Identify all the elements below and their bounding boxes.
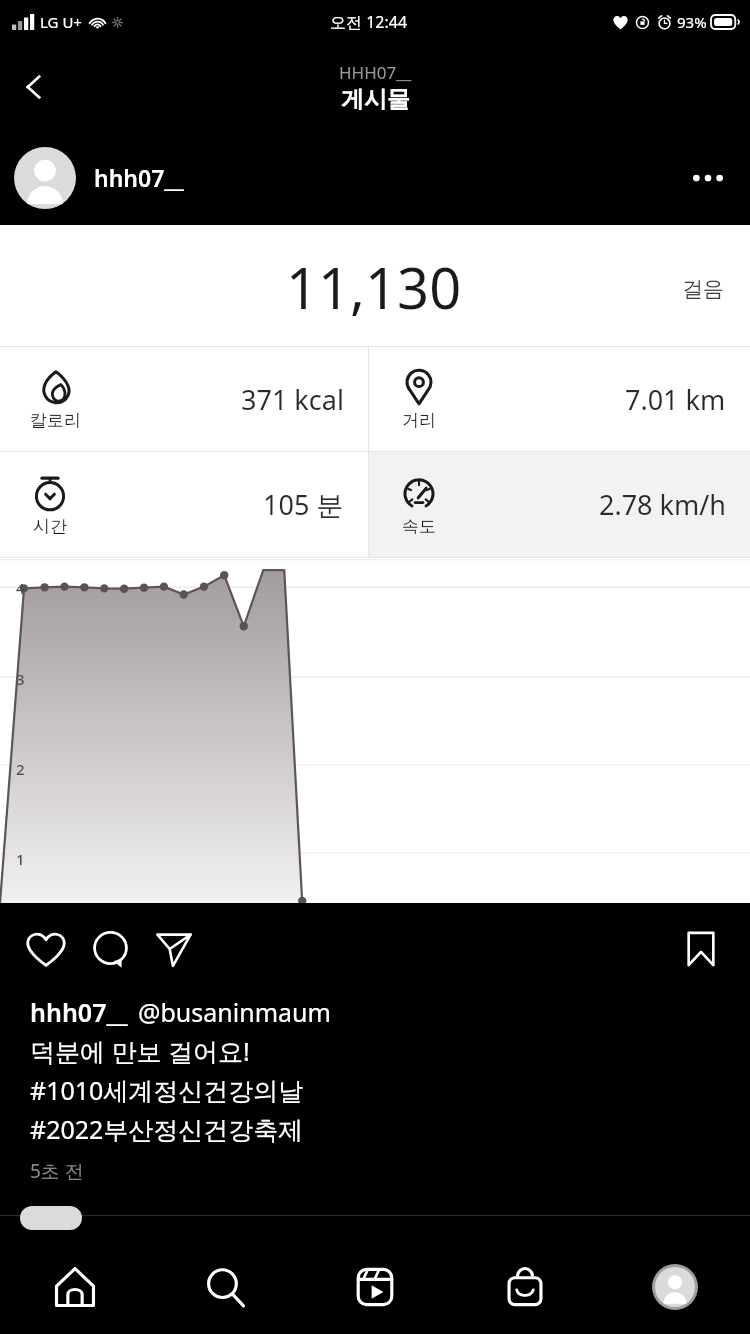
button[interactable]: Profile <box>600 1240 750 1334</box>
staticText: 105 분 <box>263 486 344 523</box>
staticText: hhh07__ <box>94 162 184 193</box>
staticText: 걸음 <box>682 276 724 302</box>
staticText: HHH07__ <box>339 61 412 84</box>
staticText: 게시물 <box>341 85 410 114</box>
button[interactable]: 시간 <box>0 452 368 557</box>
button[interactable]: 속도 <box>369 452 750 557</box>
staticText: 371 kcal <box>241 381 344 418</box>
button[interactable]: hhh07__ <box>30 995 128 1029</box>
staticText: 덕분에 만보 걸어요! <box>30 1034 250 1068</box>
button[interactable]: 거리 <box>369 347 750 451</box>
button[interactable]: #2022부산정신건강축제 <box>30 1112 304 1146</box>
button[interactable]: Search <box>150 1240 300 1334</box>
button[interactable]: hhh07__ <box>94 162 680 193</box>
button[interactable]: Home <box>0 1240 150 1334</box>
button[interactable]: Comment <box>78 917 142 981</box>
staticText: 속도 <box>402 516 436 537</box>
staticText: LG U+ <box>40 12 82 32</box>
button[interactable]: Save <box>670 918 732 980</box>
staticText: 거리 <box>402 410 436 431</box>
button[interactable]: Profile picture <box>14 147 76 209</box>
staticText: 칼로리 <box>30 410 81 431</box>
button[interactable]: @busaninmaum <box>138 995 331 1029</box>
staticText: 4 <box>16 578 750 598</box>
button[interactable]: #1010세계정신건강의날 <box>30 1073 304 1107</box>
staticText: 11,130 <box>286 249 462 325</box>
button[interactable]: Reels <box>300 1240 450 1334</box>
button[interactable]: Back <box>6 59 62 115</box>
staticText: 2 <box>16 759 750 779</box>
button[interactable]: Shop <box>450 1240 600 1334</box>
staticText: 3 <box>16 669 750 689</box>
staticText: 7.01 km <box>625 381 726 418</box>
staticText: 93% <box>677 12 707 32</box>
button[interactable]: More options <box>680 150 736 206</box>
button[interactable]: 칼로리 <box>0 347 368 451</box>
staticText: 5초 전 <box>30 1158 84 1184</box>
button[interactable]: Share <box>142 917 206 981</box>
staticText: 1 <box>16 849 750 869</box>
button[interactable]: Like <box>14 917 78 981</box>
staticText: 시간 <box>33 516 67 537</box>
staticText: 2.78 km/h <box>599 486 726 523</box>
staticText: 오전 12:44 <box>330 11 408 33</box>
